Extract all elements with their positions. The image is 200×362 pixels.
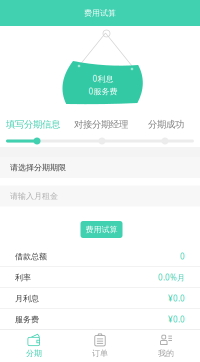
staticText: 利率 [15,273,31,282]
staticText: 0 [180,251,185,262]
button[interactable]: 费用试算 [80,221,122,238]
staticText: 0利息 [92,73,113,84]
staticText: ¥0.0 [168,293,185,304]
staticText: 借款总额 [15,252,47,261]
staticText: 请选择分期期限 [10,163,66,172]
button[interactable]: 订单 [67,330,133,361]
button[interactable]: 请输入月租金 [0,185,200,206]
staticText: 请输入月租金 [10,191,58,201]
staticText: 服务费 [15,315,39,324]
staticText: ¥0.0 [168,314,185,325]
staticText: 分期 [26,348,42,358]
staticText: 0.0%月 [158,272,185,283]
staticText: 分期成功 [148,119,184,130]
staticText: 订单 [92,348,108,358]
button[interactable]: 我的 [133,330,199,361]
button[interactable]: 费用试算 [0,0,200,26]
button[interactable]: 请选择分期期限 [0,157,200,178]
staticText: 填写分期信息 [6,119,60,130]
button[interactable]: 分期 [1,330,67,361]
staticText: 对接分期经理 [74,119,128,130]
staticText: 月利息 [15,294,39,303]
staticText: 费用试算 [84,8,116,18]
staticText: 我的 [158,348,174,358]
staticText: 费用试算 [85,225,117,234]
staticText: 0服务费 [88,86,117,97]
